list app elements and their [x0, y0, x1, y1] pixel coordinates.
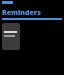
button[interactable]: Reminders — [2, 8, 41, 18]
button[interactable] — [2, 23, 20, 50]
